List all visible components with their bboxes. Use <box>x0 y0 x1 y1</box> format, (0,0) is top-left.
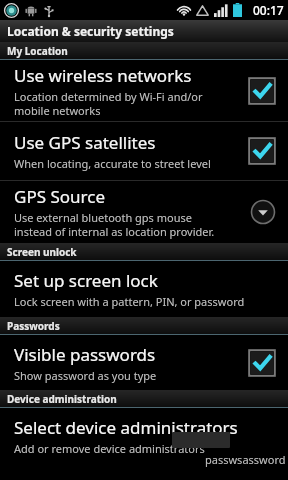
staticText: Show password as you type <box>14 368 157 383</box>
button[interactable]: Visible passwords toggle <box>244 345 280 381</box>
staticText: Use external bluetooth gps mouse instead… <box>14 210 215 239</box>
staticText: Use wireless networks <box>14 64 192 87</box>
staticText: Use GPS satellites <box>14 131 156 154</box>
staticText: Device administration <box>7 392 117 406</box>
staticText: Screen unlock <box>7 245 77 259</box>
button[interactable]: Set up screen lock <box>0 261 288 317</box>
button[interactable]: Visible passwords <box>0 335 288 390</box>
staticText: GPS Source <box>14 185 105 208</box>
staticText: Location & security settings <box>7 23 174 39</box>
button[interactable]: Use wireless networks <box>0 60 288 121</box>
button[interactable]: GPS Source <box>0 181 288 243</box>
staticText: Lock screen with a pattern, PIN, or pass… <box>14 294 245 309</box>
staticText: Visible passwords <box>14 343 156 366</box>
staticText: Select device administrators <box>14 416 238 439</box>
staticText: 00:17 <box>253 2 284 18</box>
button[interactable]: Select device administrators <box>0 408 288 464</box>
staticText: When locating, accurate to street level <box>14 156 211 171</box>
button[interactable]: GPS Source options <box>246 195 280 229</box>
button[interactable]: Use wireless networks toggle <box>244 73 280 109</box>
staticText: passwsassword <box>205 452 286 467</box>
staticText: Passwords <box>7 319 60 333</box>
staticText: Set up screen lock <box>14 269 158 292</box>
staticText: Add or remove device administrators <box>14 441 205 456</box>
staticText: My Location <box>7 44 68 58</box>
staticText: Location determined by Wi-Fi and/or mobi… <box>14 89 203 118</box>
button[interactable]: Use GPS satellites <box>0 122 288 180</box>
button[interactable]: Use GPS satellites toggle <box>244 133 280 169</box>
